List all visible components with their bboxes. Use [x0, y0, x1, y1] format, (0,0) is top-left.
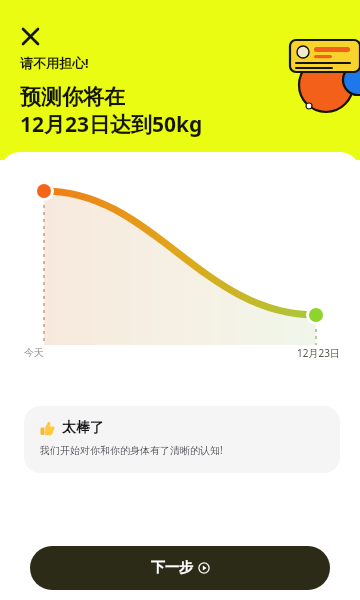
staticText: 我们开始对你和你的身体有了清晰的认知! [40, 443, 223, 457]
staticText: 12月23日 [270, 346, 340, 360]
staticText: 请不用担心! [20, 54, 89, 72]
staticText: 太棒了 [62, 419, 104, 437]
button[interactable]: 下一步 [30, 546, 330, 590]
button[interactable]: 太棒了 [24, 406, 340, 473]
staticText: 今天 [24, 346, 44, 359]
staticText: 下一步 [151, 559, 193, 577]
button[interactable]: 关闭 [16, 22, 44, 50]
staticText: 12月23日达到50kg [20, 110, 203, 139]
staticText: 预测你将在 [20, 84, 125, 110]
